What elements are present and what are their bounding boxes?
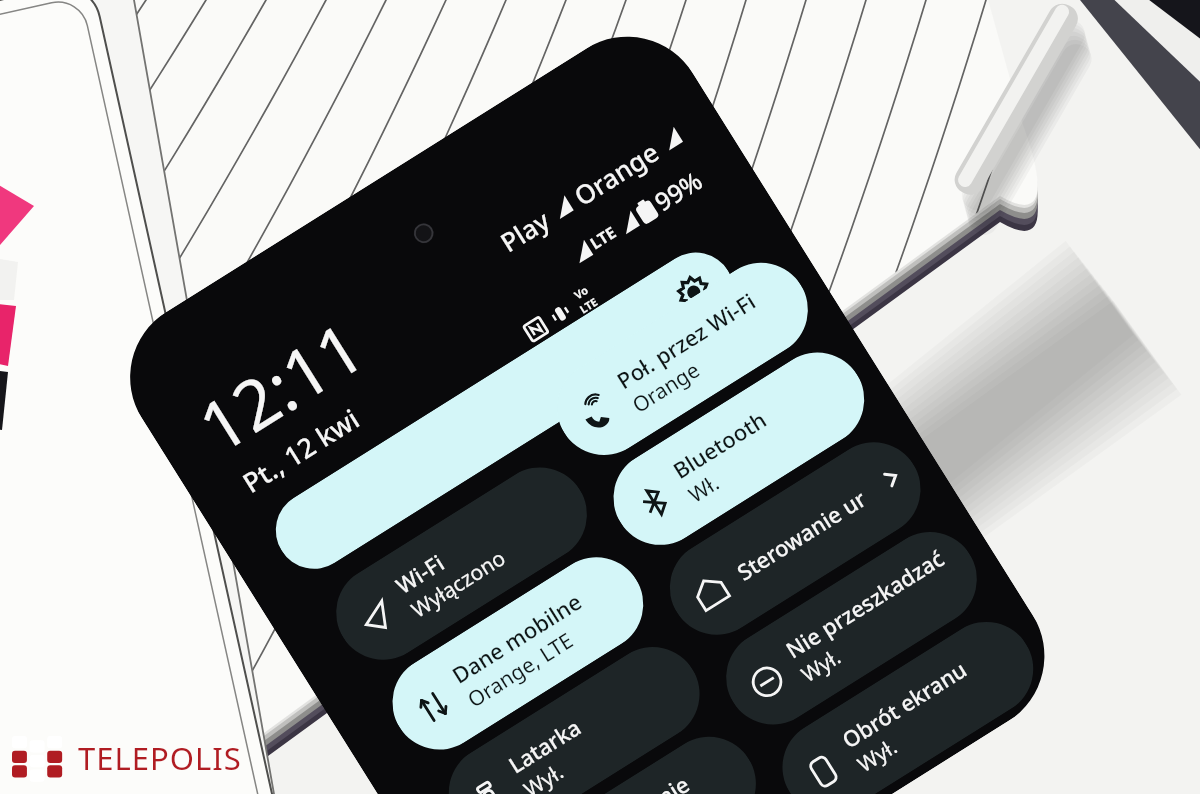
staticText: Oszczędzanie: [559, 768, 695, 794]
staticText: Vo: [571, 282, 591, 302]
button[interactable]: Dane mobilne: [375, 539, 661, 767]
staticText: Bluetooth: [667, 404, 772, 485]
staticText: TELEPOLIS: [78, 737, 242, 779]
staticText: Orange: [567, 133, 665, 213]
button[interactable]: Latarka: [431, 629, 717, 794]
staticText: Poł. przez Wi-Fi: [611, 286, 761, 395]
staticText: Wył.: [852, 732, 903, 779]
button[interactable]: Bluetooth: [596, 335, 882, 563]
staticText: LTE: [576, 294, 601, 316]
button[interactable]: Nie przeszkadzać: [708, 514, 995, 742]
staticText: Sterowanie ur: [731, 483, 871, 586]
button[interactable]: Sterowanie ur: [652, 424, 938, 652]
staticText: Wył.: [796, 642, 847, 689]
staticText: 12:11: [180, 299, 380, 473]
staticText: LTE: [586, 221, 620, 254]
staticText: Wł.: [683, 468, 725, 509]
button[interactable]: Brightness slider: [261, 238, 749, 583]
staticText: Nie przeszkadzać: [780, 542, 950, 664]
button[interactable]: Poł. przez Wi-Fi: [539, 245, 826, 473]
staticText: Orange, LTE: [462, 626, 579, 714]
staticText: Obrót ekranu: [836, 653, 972, 754]
staticText: Orange: [627, 355, 706, 420]
staticText: Dane mobilne: [446, 585, 587, 690]
staticText: 99%: [648, 163, 708, 218]
button[interactable]: Oszczędzanie: [487, 719, 774, 794]
staticText: Wyłączono: [406, 543, 511, 624]
staticText: Pt., 12 kwi: [235, 400, 366, 501]
staticText: Latarka: [502, 711, 586, 779]
staticText: Wi-Fi: [390, 547, 450, 600]
staticText: Play: [493, 202, 556, 259]
staticText: Wył.: [518, 757, 569, 794]
button[interactable]: Wi-Fi: [318, 450, 605, 678]
button[interactable]: Obrót ekranu: [765, 604, 1051, 794]
